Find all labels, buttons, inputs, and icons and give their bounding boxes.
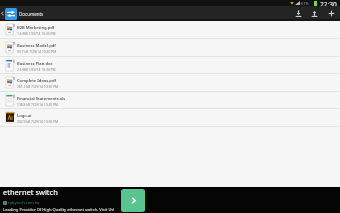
staticText: Documents: [19, 11, 44, 17]
button[interactable]: Upload: [306, 6, 323, 21]
staticText: Complete Ideas.pdf: [17, 78, 56, 84]
staticText: 1.6 MB 7/29/14 10:30 PM: [17, 31, 56, 35]
button[interactable]: Download: [290, 6, 306, 21]
button[interactable]: Back: [0, 6, 17, 21]
button[interactable]: Business Model.pdf: [0, 39, 340, 56]
button[interactable]: Complete Ideas.pdf: [0, 74, 340, 91]
staticText: 261.7 kB 7/29/14 10:30 PM: [17, 84, 59, 88]
staticText: 93.7 kB 7/29/14 10:30 PM: [17, 49, 57, 53]
button[interactable]: Add: [323, 6, 340, 21]
staticText: 61%: [301, 1, 309, 6]
staticText: Business Plan.doc: [17, 61, 53, 67]
button[interactable]: B2B Marketing.pdf: [0, 21, 340, 38]
button[interactable]: Business Plan.doc: [0, 57, 340, 73]
staticText: rubytech.com.tw: [8, 200, 40, 205]
staticText: ethernet switch: [3, 187, 58, 197]
button[interactable]: Open advertisement: [121, 189, 145, 212]
staticText: 202.9 kB 7/29/14 10:30 PM: [17, 119, 59, 123]
staticText: Leading Provider Of High Quality etherne…: [3, 207, 115, 213]
staticText: 138.8 kB 7/29/14 10:30 PM: [17, 102, 59, 106]
staticText: 2.6 MB 7/29/14 10:30 PM: [17, 67, 56, 71]
other: Back: [1, 10, 4, 17]
staticText: Logo.ai: [17, 113, 32, 119]
button[interactable]: Logo.ai: [0, 109, 340, 126]
staticText: Financial Statements.xls: [17, 96, 66, 102]
staticText: B2B Marketing.pdf: [17, 25, 55, 31]
staticText: 22:30: [320, 0, 337, 6]
staticText: Business Model.pdf: [17, 43, 56, 49]
button[interactable]: Financial Statements.xls: [0, 92, 340, 108]
